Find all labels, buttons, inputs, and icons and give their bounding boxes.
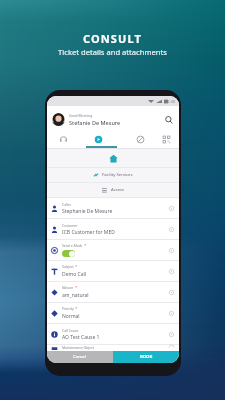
button[interactable]: Customer <box>47 219 179 239</box>
button[interactable]: Subject <box>47 261 179 281</box>
button[interactable]: Search <box>163 114 174 125</box>
button[interactable]: Send e-Mails toggle <box>62 250 75 257</box>
staticText: Customer <box>62 223 78 228</box>
button[interactable]: Facility Services <box>47 168 179 182</box>
staticText: Maintenance Object <box>62 345 94 350</box>
staticText: CONSULT <box>83 31 142 46</box>
staticText: Subject <box>62 264 74 269</box>
staticText: * <box>75 285 78 291</box>
button[interactable]: BOOK <box>113 351 179 363</box>
staticText: Access <box>111 187 125 193</box>
staticText: * <box>75 264 78 270</box>
button[interactable]: Home <box>47 149 179 167</box>
button[interactable]: Send e-Mails <box>47 240 179 260</box>
staticText: Nature <box>62 285 74 290</box>
staticText: ICB Customer for MED <box>62 229 115 236</box>
button[interactable]: Scan <box>151 132 179 146</box>
button[interactable]: Orders <box>125 132 155 146</box>
button[interactable]: Caller <box>47 198 179 218</box>
staticText: * <box>75 306 78 312</box>
staticText: Call Cause <box>62 328 79 333</box>
button[interactable]: Nature <box>47 282 179 302</box>
button[interactable]: Call Cause <box>47 324 179 344</box>
button[interactable]: Access <box>47 183 179 197</box>
staticText: Cancel <box>73 354 87 360</box>
staticText: Good Morning <box>69 113 93 118</box>
button[interactable]: Maintenance Object <box>47 345 179 351</box>
staticText: Stephanie De Mesure <box>62 208 113 215</box>
staticText: Caller <box>62 202 72 207</box>
staticText: AO Test Cause 1 <box>62 334 100 341</box>
button[interactable]: Support <box>48 132 78 146</box>
button[interactable]: Cancel <box>47 351 113 363</box>
staticText: Facility Services <box>102 172 133 178</box>
staticText: Normal <box>62 313 80 320</box>
staticText: Send e-Mails <box>62 243 83 248</box>
staticText: BOOK <box>140 354 153 360</box>
button[interactable]: Consult <box>83 132 113 146</box>
button[interactable]: Priority <box>47 303 179 323</box>
staticText: Stefanie De Mesure <box>69 119 121 126</box>
staticText: * <box>84 243 87 249</box>
staticText: Priority <box>62 306 74 311</box>
staticText: am_natural <box>62 292 89 299</box>
staticText: 12:30 <box>165 99 176 104</box>
staticText: Ticket details and attachments <box>58 47 167 57</box>
staticText: Demo Call <box>62 271 87 278</box>
